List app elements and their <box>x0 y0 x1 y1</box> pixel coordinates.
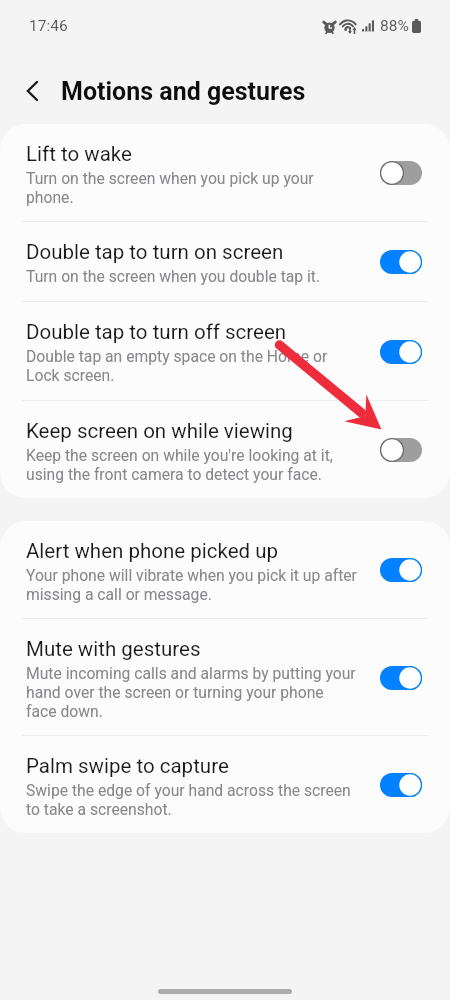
staticText: Turn on the screen when you pick up your… <box>26 169 357 207</box>
staticText: Mute with gestures <box>26 637 201 661</box>
button[interactable]: Switch on <box>380 340 422 364</box>
button[interactable] <box>0 124 450 222</box>
staticText: Turn on the screen when you double tap i… <box>26 267 321 286</box>
button[interactable]: Back <box>17 75 49 107</box>
staticText: Alert when phone picked up <box>26 539 278 563</box>
button[interactable]: Switch off <box>380 438 422 462</box>
staticText: Mute incoming calls and alarms by puttin… <box>26 664 357 721</box>
staticText: 17:46 <box>29 17 68 35</box>
button[interactable]: Switch on <box>380 558 422 582</box>
staticText: Double tap an empty space on the Home or… <box>26 347 357 385</box>
button[interactable]: Switch on <box>380 250 422 274</box>
staticText: Keep screen on while viewing <box>26 419 293 443</box>
button[interactable] <box>0 521 450 619</box>
staticText: Motions and gestures <box>61 77 306 106</box>
button[interactable]: Switch off <box>380 161 422 185</box>
button[interactable] <box>0 619 450 736</box>
staticText: Swipe the edge of your hand across the s… <box>26 781 357 819</box>
button[interactable] <box>0 401 450 498</box>
button[interactable] <box>0 736 450 833</box>
staticText: Double tap to turn on screen <box>26 240 284 264</box>
staticText: 88% <box>380 17 409 35</box>
staticText: Palm swipe to capture <box>26 754 229 778</box>
button[interactable]: Switch on <box>380 773 422 797</box>
staticText: Your phone will vibrate when you pick it… <box>26 566 357 604</box>
staticText: Keep the screen on while you're looking … <box>26 446 357 484</box>
staticText: Lift to wake <box>26 142 132 166</box>
button[interactable]: Switch on <box>380 666 422 690</box>
button[interactable] <box>0 222 450 302</box>
button[interactable] <box>0 302 450 401</box>
staticText: Double tap to turn off screen <box>26 320 287 344</box>
